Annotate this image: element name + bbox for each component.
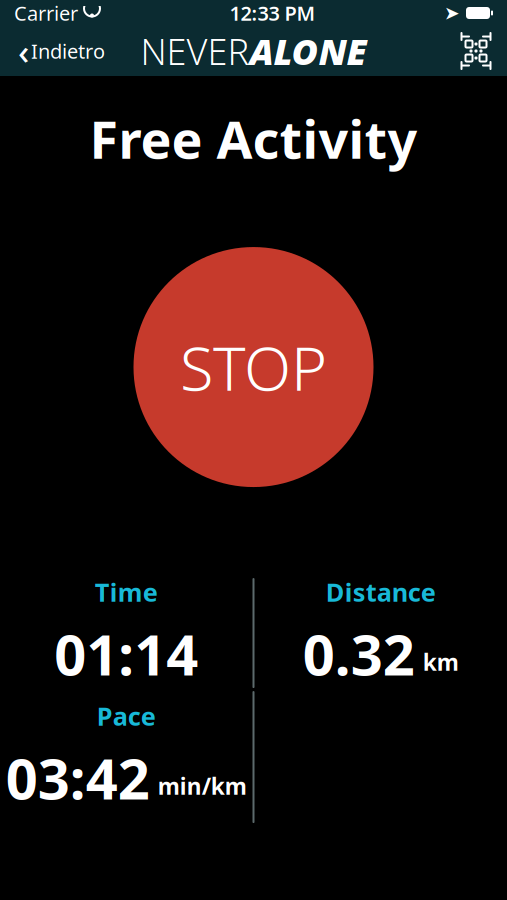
staticText: 0.32 — [303, 617, 415, 691]
staticText: 01:14 — [54, 617, 198, 691]
staticText: Pace — [97, 699, 156, 733]
staticText: NEVER — [140, 27, 249, 75]
staticText: 12:33 PM — [229, 0, 315, 26]
staticText: ➤ — [444, 2, 460, 24]
staticText: Carrier — [14, 0, 78, 26]
button[interactable]: ‹ — [6, 26, 117, 76]
staticText: 03:42 — [6, 741, 150, 815]
staticText: km — [423, 647, 459, 677]
button[interactable]: Scan QR code — [451, 26, 501, 76]
button[interactable]: STOP — [133, 247, 373, 487]
staticText — [78, 0, 83, 26]
staticText: ‹ — [18, 28, 29, 74]
staticText: min/km — [158, 771, 247, 801]
staticText: Time — [95, 575, 158, 609]
staticText: Indietro — [31, 38, 105, 64]
staticText: STOP — [180, 326, 327, 408]
staticText: Free Activity — [89, 104, 417, 173]
staticText: ALONE — [249, 27, 366, 75]
staticText: Distance — [326, 575, 436, 609]
